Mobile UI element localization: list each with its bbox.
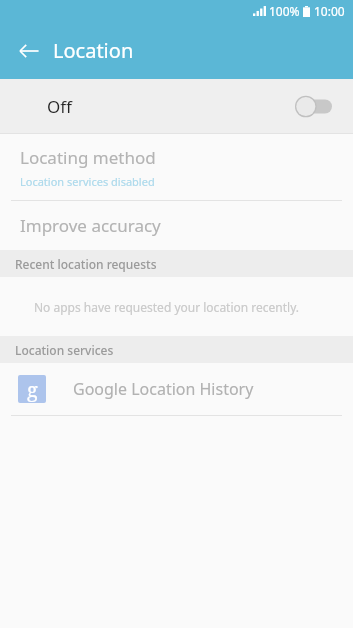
staticText: Improve accuracy bbox=[20, 214, 161, 237]
button[interactable]: g bbox=[0, 363, 353, 415]
staticText: Google Location History bbox=[73, 378, 254, 400]
staticText: g bbox=[27, 376, 38, 403]
button[interactable]: Locating method bbox=[0, 134, 353, 200]
staticText: Recent location requests bbox=[15, 256, 157, 272]
staticText: Location services disabled bbox=[20, 174, 155, 189]
staticText: Location services bbox=[15, 342, 114, 358]
button[interactable]: Back bbox=[8, 30, 50, 72]
button[interactable]: Off bbox=[0, 79, 353, 133]
staticText: 100% bbox=[269, 3, 300, 19]
staticText: Off bbox=[47, 95, 72, 118]
staticText: Locating method bbox=[20, 146, 156, 169]
staticText: 10:00 bbox=[314, 3, 345, 19]
staticText: No apps have requested your location rec… bbox=[34, 299, 300, 315]
staticText: Location bbox=[53, 37, 134, 64]
button[interactable]: Improve accuracy bbox=[0, 201, 353, 250]
